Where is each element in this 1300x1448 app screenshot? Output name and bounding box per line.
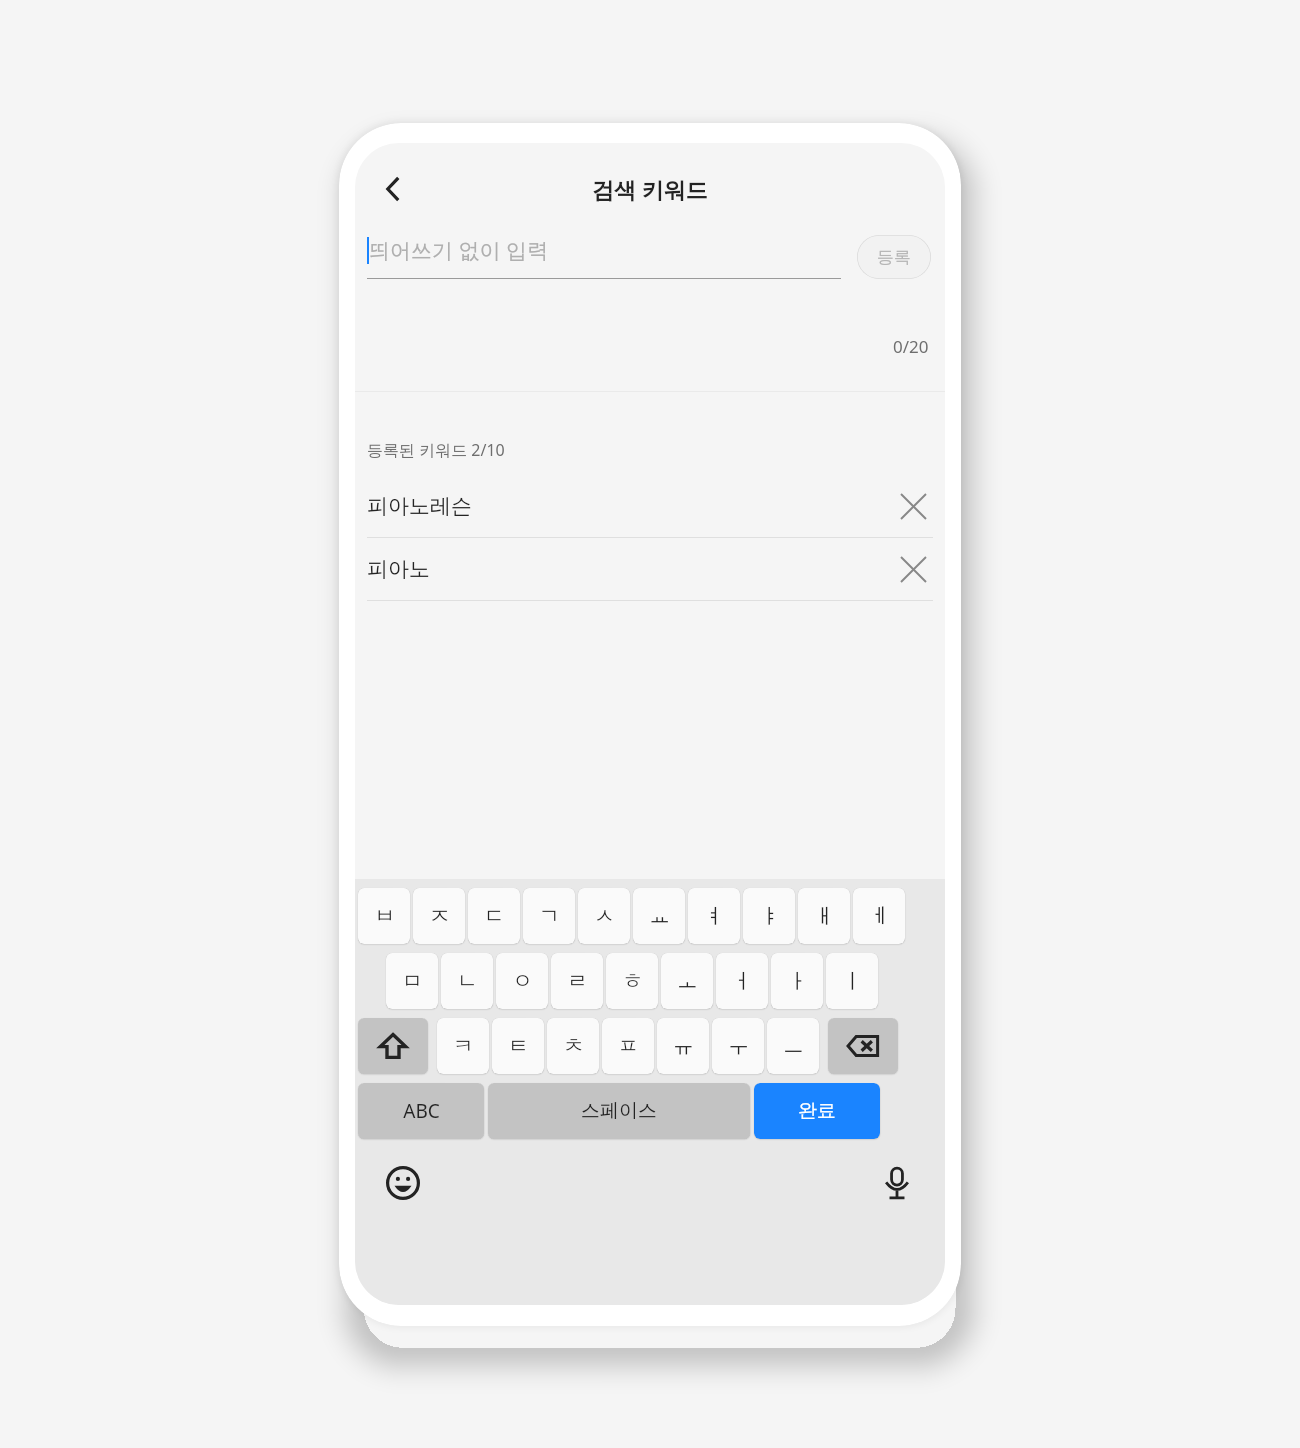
staticText: 등록된 키워드 2/10: [367, 439, 505, 461]
staticText: ㅛ: [649, 903, 670, 929]
staticText: ㅕ: [704, 903, 725, 929]
button[interactable]: Delete 피아노: [893, 549, 933, 589]
button[interactable]: ㅍ: [602, 1018, 654, 1074]
staticText: ㅅ: [594, 903, 615, 929]
staticText: ㅔ: [869, 903, 890, 929]
staticText: ㅏ: [787, 968, 808, 994]
staticText: ㅈ: [429, 903, 450, 929]
button[interactable]: Voice input: [873, 1159, 921, 1207]
staticText: ㅌ: [508, 1033, 529, 1059]
staticText: ㅊ: [563, 1033, 584, 1059]
staticText: ㅐ: [814, 903, 835, 929]
staticText: ㅠ: [673, 1033, 694, 1059]
staticText: 피아노: [367, 556, 893, 582]
staticText: ㅇ: [512, 968, 533, 994]
button[interactable]: ㅈ: [413, 888, 465, 944]
staticText: ㅍ: [618, 1033, 639, 1059]
button[interactable]: ㄱ: [523, 888, 575, 944]
button[interactable]: ABC: [358, 1083, 484, 1139]
staticText: ㄷ: [484, 903, 505, 929]
button[interactable]: 피아노레슨: [367, 475, 933, 537]
button[interactable]: Emoji: [379, 1159, 427, 1207]
staticText: ㅑ: [759, 903, 780, 929]
button[interactable]: 완료: [754, 1083, 880, 1139]
staticText: 완료: [798, 1099, 836, 1123]
button[interactable]: ㅏ: [771, 953, 823, 1009]
button[interactable]: ㅂ: [358, 888, 410, 944]
staticText: ㅡ: [783, 1033, 804, 1059]
button[interactable]: ㄷ: [468, 888, 520, 944]
staticText: 검색 키워드: [592, 174, 708, 204]
staticText: ㅓ: [732, 968, 753, 994]
button[interactable]: Shift: [358, 1018, 428, 1074]
button[interactable]: Backspace: [828, 1018, 898, 1074]
staticText: ABC: [403, 1098, 440, 1124]
button[interactable]: ㅁ: [386, 953, 438, 1009]
button[interactable]: Back: [369, 165, 417, 213]
staticText: 띄어쓰기 없이 입력: [369, 236, 548, 265]
button[interactable]: ㅣ: [826, 953, 878, 1009]
staticText: 스페이스: [581, 1099, 657, 1123]
button[interactable]: ㅡ: [767, 1018, 819, 1074]
button[interactable]: ㅌ: [492, 1018, 544, 1074]
staticText: ㅣ: [842, 968, 863, 994]
button[interactable]: ㅊ: [547, 1018, 599, 1074]
button[interactable]: Delete 피아노레슨: [893, 486, 933, 526]
button[interactable]: ㅇ: [496, 953, 548, 1009]
staticText: ㅎ: [622, 968, 643, 994]
button[interactable]: ㄹ: [551, 953, 603, 1009]
button[interactable]: 스페이스: [488, 1083, 750, 1139]
staticText: 피아노레슨: [367, 493, 893, 519]
staticText: ㅜ: [728, 1033, 749, 1059]
button[interactable]: ㄴ: [441, 953, 493, 1009]
button[interactable]: ㅐ: [798, 888, 850, 944]
button[interactable]: ㅎ: [606, 953, 658, 1009]
button[interactable]: ㅕ: [688, 888, 740, 944]
staticText: ㅁ: [402, 968, 423, 994]
button[interactable]: ㅠ: [657, 1018, 709, 1074]
button[interactable]: ㅜ: [712, 1018, 764, 1074]
staticText: ㅂ: [374, 903, 395, 929]
staticText: ㄹ: [567, 968, 588, 994]
button[interactable]: ㅓ: [716, 953, 768, 1009]
staticText: ㄴ: [457, 968, 478, 994]
staticText: ㄱ: [539, 903, 560, 929]
button[interactable]: ㅛ: [633, 888, 685, 944]
button[interactable]: ㅑ: [743, 888, 795, 944]
staticText: 0/20: [893, 335, 929, 358]
button[interactable]: 등록: [857, 235, 931, 279]
button[interactable]: ㅗ: [661, 953, 713, 1009]
button[interactable]: 피아노: [367, 538, 933, 600]
staticText: ㅋ: [453, 1033, 474, 1059]
button[interactable]: ㅅ: [578, 888, 630, 944]
button[interactable]: ㅔ: [853, 888, 905, 944]
staticText: 등록: [877, 247, 911, 268]
button[interactable]: ㅋ: [437, 1018, 489, 1074]
staticText: ㅗ: [677, 968, 698, 994]
